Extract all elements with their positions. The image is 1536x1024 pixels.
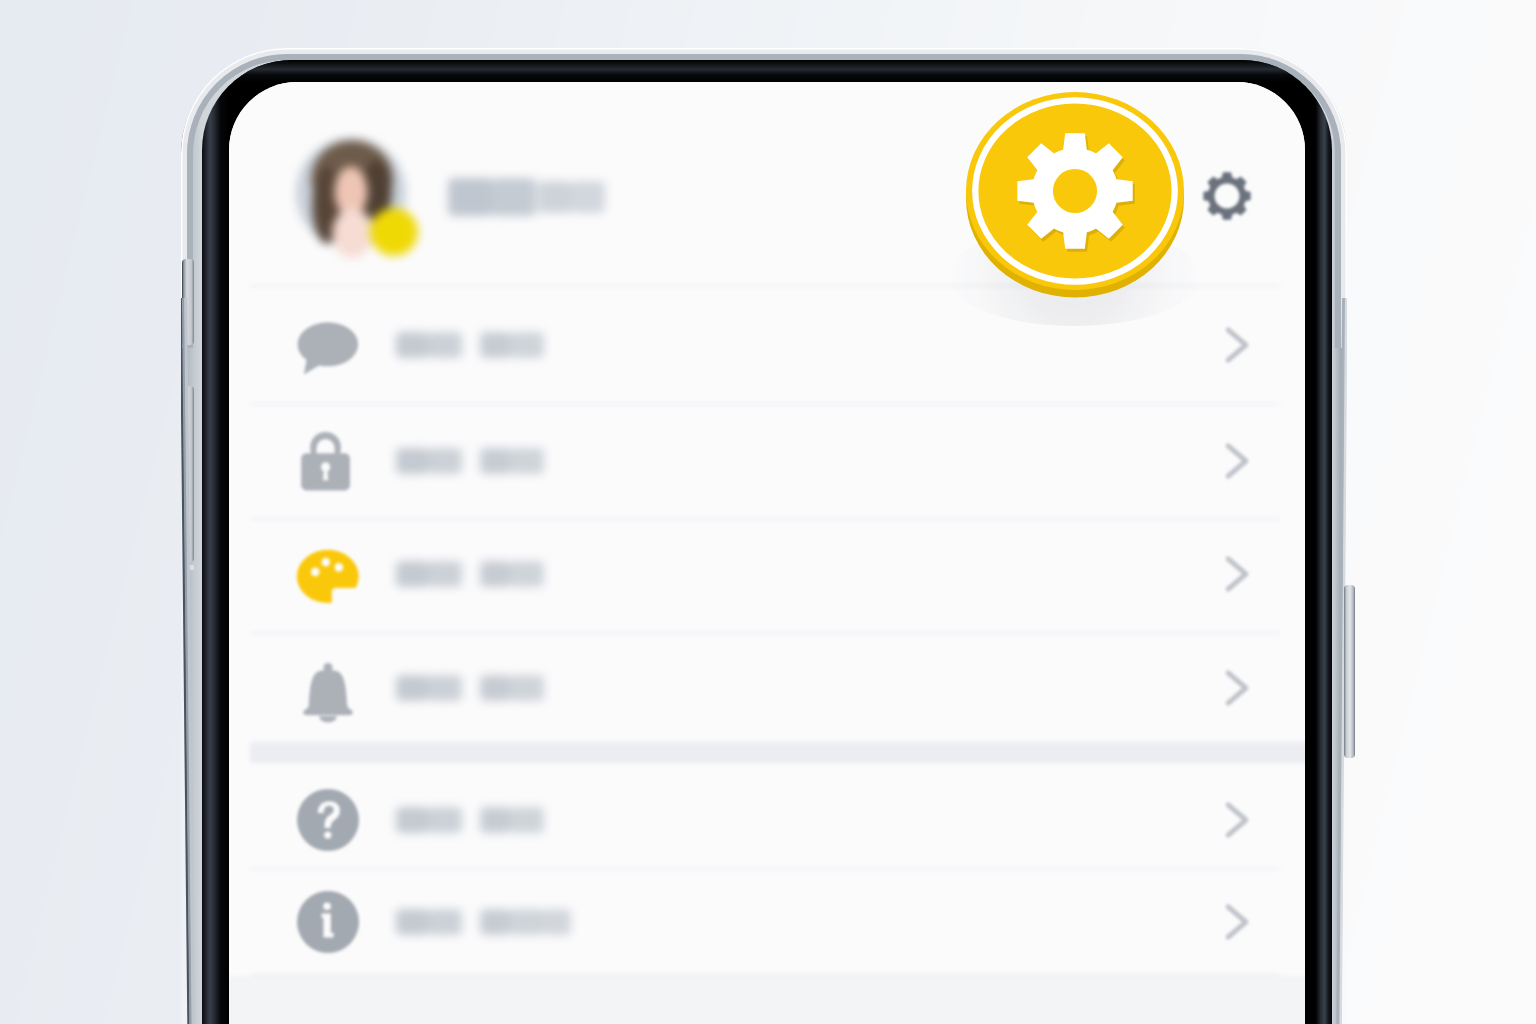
button[interactable]: Help (229, 763, 1305, 877)
button[interactable]: Privacy settings (229, 404, 1305, 518)
button[interactable]: Chat settings (229, 288, 1305, 402)
button[interactable]: Theme settings (229, 517, 1305, 631)
button[interactable]: Settings (952, 82, 1198, 304)
button[interactable]: About (229, 865, 1305, 979)
button[interactable]: Settings (1189, 158, 1265, 234)
button[interactable]: Profile (229, 82, 1305, 285)
button[interactable]: Notification settings (229, 631, 1305, 745)
